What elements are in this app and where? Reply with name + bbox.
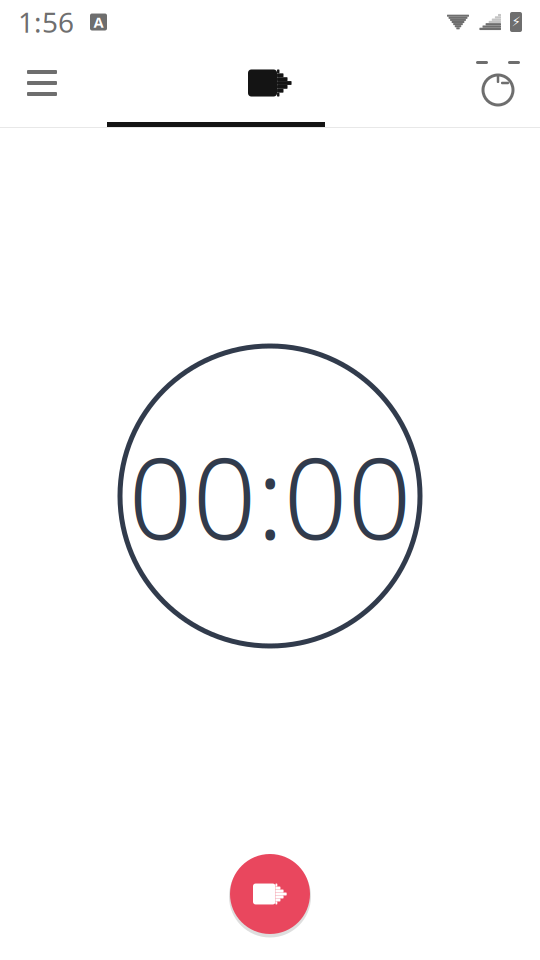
button[interactable]: Menu (0, 44, 84, 122)
button[interactable]: Start recording (222, 846, 318, 942)
button[interactable]: Record (210, 44, 330, 122)
staticText: 00:00 (128, 422, 411, 570)
button[interactable]: Alarms (456, 44, 540, 122)
staticText: A (93, 12, 103, 32)
staticText: 1:56 (18, 3, 74, 41)
staticText: ⚡︎ (511, 14, 520, 29)
